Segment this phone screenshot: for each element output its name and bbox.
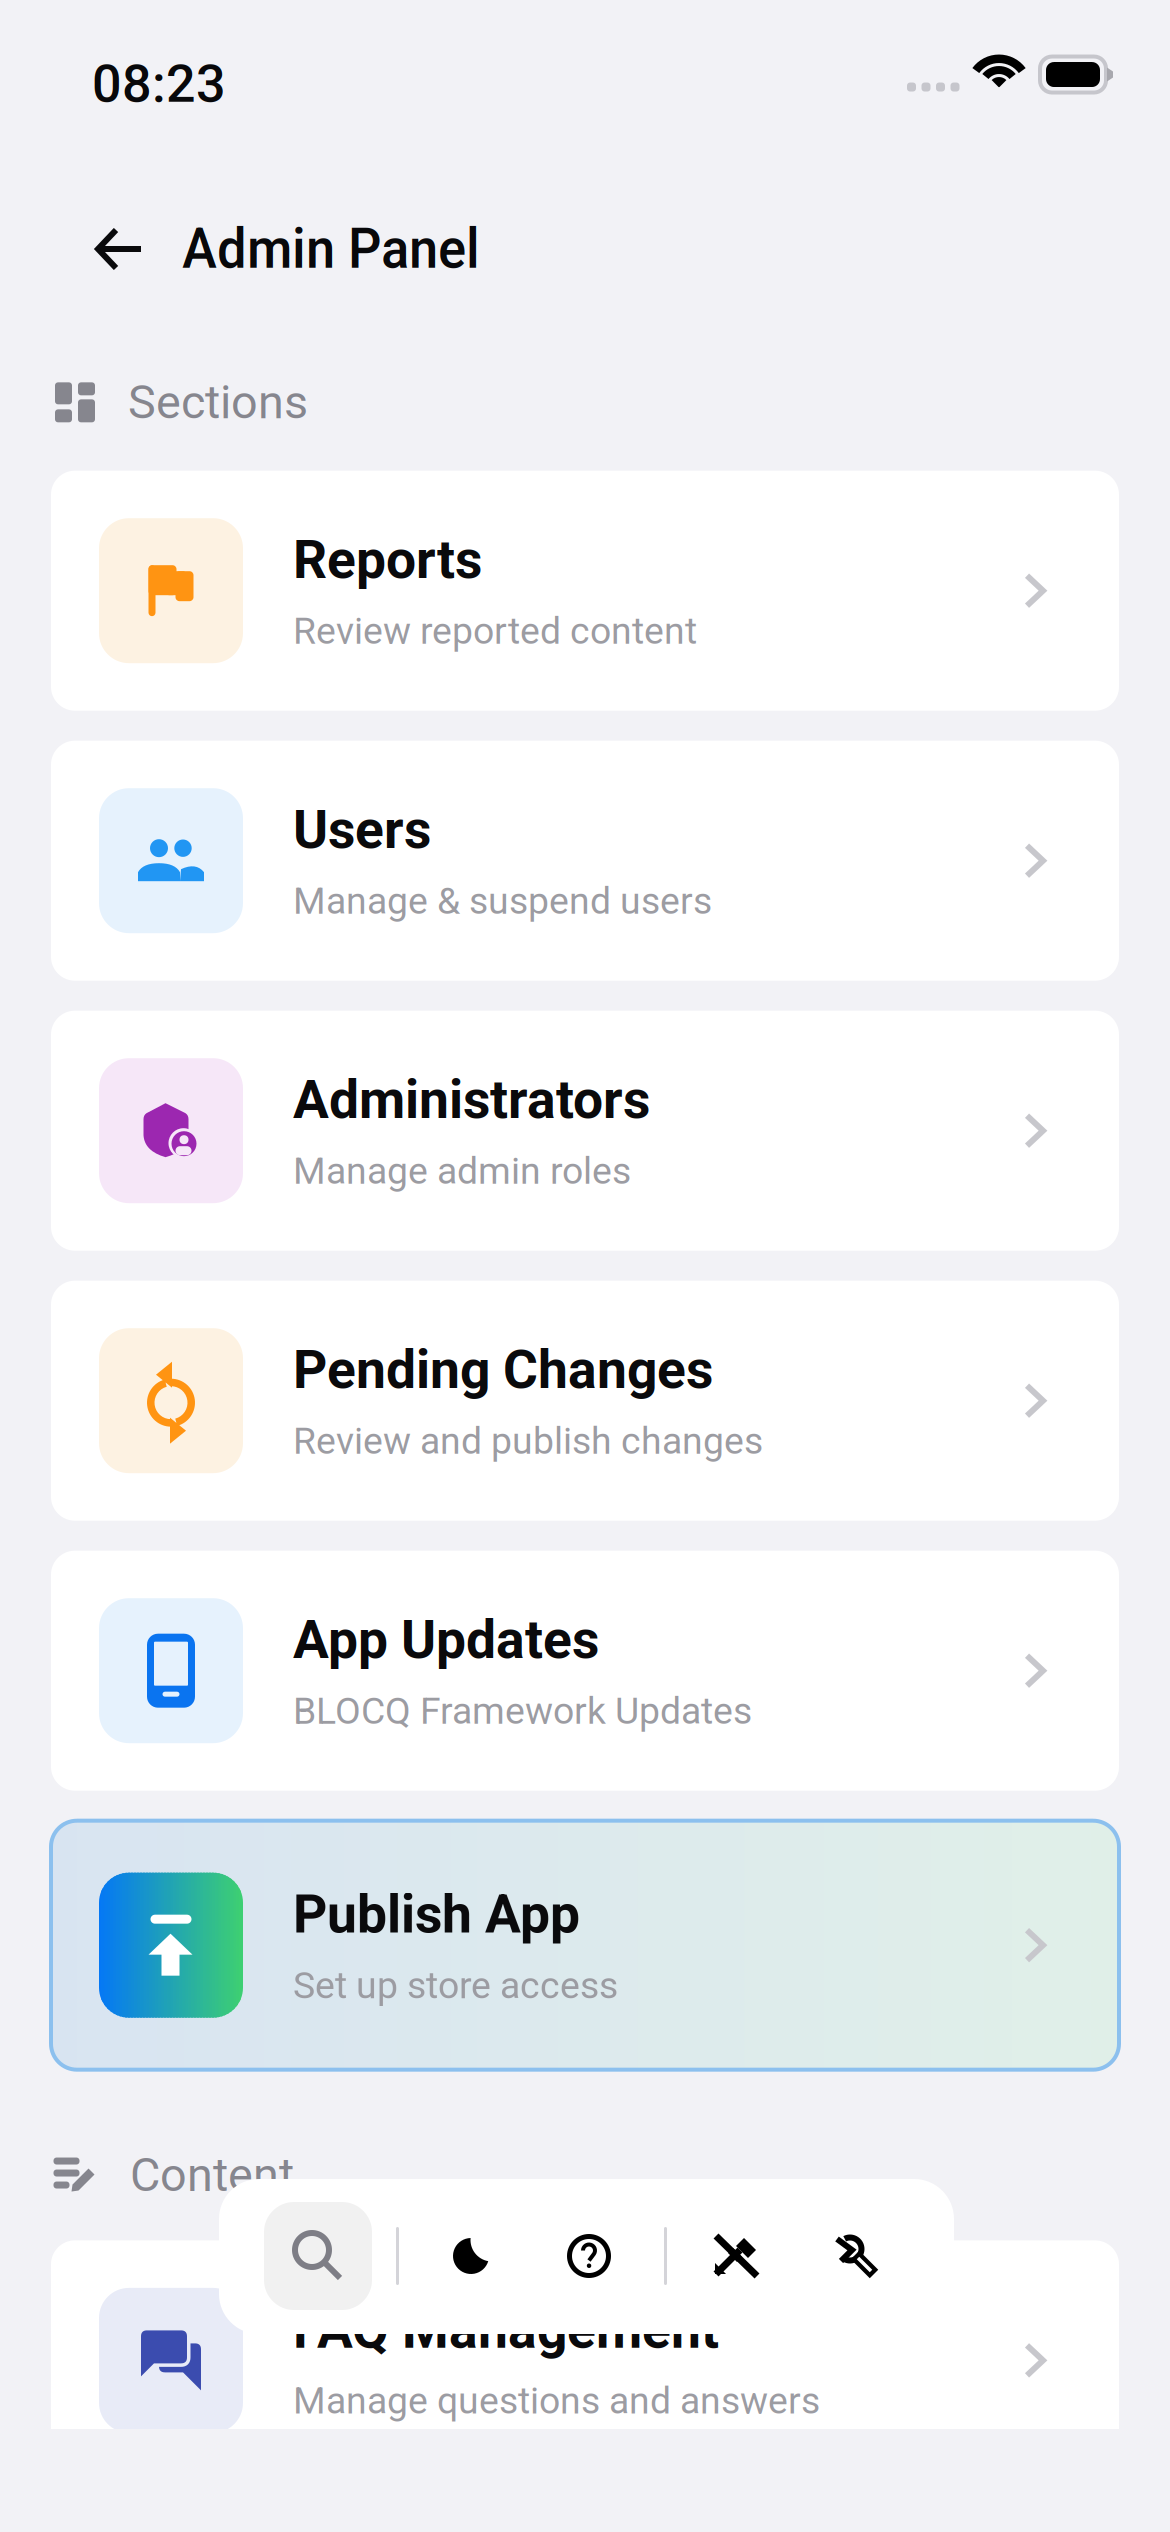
button[interactable]: App Updates <box>51 1551 1119 1791</box>
button[interactable]: Developer tools <box>824 2223 890 2289</box>
staticText: Publish App <box>293 1883 580 1946</box>
button[interactable]: Publish App <box>51 1821 1119 2070</box>
staticText: Manage questions and answers <box>293 2379 820 2422</box>
button[interactable]: Disable magic edit <box>704 2223 770 2289</box>
staticText: Review reported content <box>293 609 697 653</box>
staticText: FAQ Management <box>293 2298 719 2361</box>
button[interactable]: Help <box>556 2223 622 2289</box>
button[interactable]: Search <box>264 2202 372 2310</box>
staticText: App Updates <box>293 1609 599 1671</box>
staticText: Manage & suspend users <box>293 879 712 923</box>
button[interactable]: Reports <box>51 471 1119 711</box>
staticText: Users <box>293 799 431 861</box>
staticText: Administrators <box>293 1069 650 1131</box>
staticText: Admin Panel <box>182 217 480 281</box>
button[interactable]: Users <box>51 741 1119 981</box>
button[interactable]: FAQ Management <box>51 2240 1119 2480</box>
staticText: Manage admin roles <box>293 1149 631 1193</box>
staticText: Set up store access <box>293 1964 618 2007</box>
staticText: BLOCQ Framework Updates <box>293 1689 752 1733</box>
staticText: Sections <box>128 375 308 430</box>
staticText: Review and publish changes <box>293 1419 763 1463</box>
button[interactable]: Dark mode <box>438 2223 504 2289</box>
staticText: Reports <box>293 529 482 591</box>
button[interactable]: Pending Changes <box>51 1281 1119 1521</box>
staticText: 08:23 <box>92 53 226 114</box>
staticText: Content <box>130 2148 294 2202</box>
button[interactable]: Administrators <box>51 1011 1119 1251</box>
button[interactable]: Back <box>85 213 154 285</box>
staticText: Pending Changes <box>293 1339 713 1401</box>
